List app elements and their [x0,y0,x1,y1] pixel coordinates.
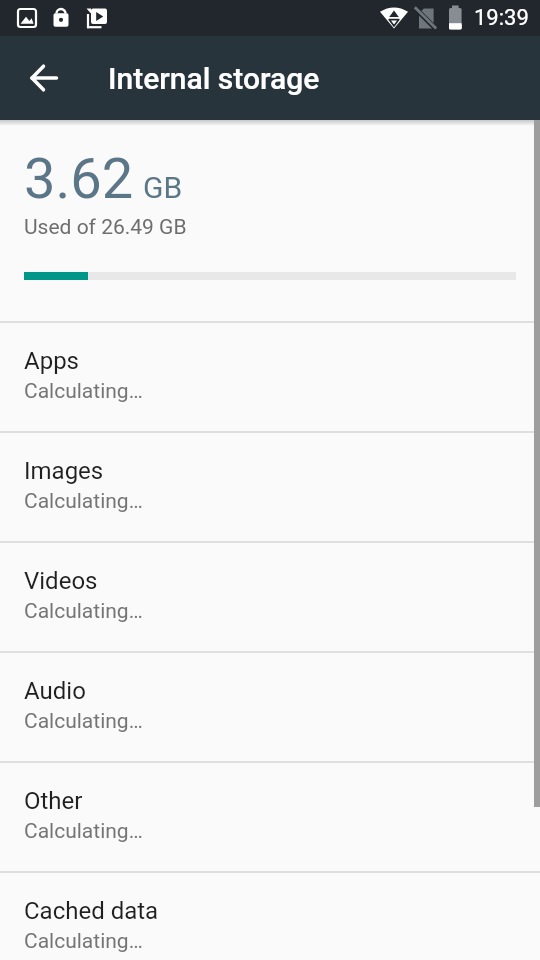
staticText: 19:39 [474,5,529,31]
button[interactable]: Images [0,433,540,541]
button[interactable]: Videos [0,543,540,651]
staticText: Cached data [24,897,159,925]
staticText: Apps [24,347,79,375]
button[interactable]: Other [0,763,540,871]
staticText: Calculating… [24,379,143,404]
staticText: Videos [24,567,98,595]
button[interactable] [0,36,88,120]
staticText: Images [24,457,104,485]
staticText: 3.62 [24,146,134,212]
staticText: Calculating… [24,929,143,954]
staticText: Calculating… [24,709,143,734]
staticText: Other [24,787,83,815]
button[interactable]: Apps [0,323,540,431]
staticText: Audio [24,677,86,705]
staticText: Internal storage [108,61,320,96]
button[interactable]: Audio [0,653,540,761]
staticText: Used of 26.49 GB [24,215,187,240]
staticText: Calculating… [24,599,143,624]
staticText: Calculating… [24,819,143,844]
button[interactable]: Cached data [0,873,540,960]
staticText: GB [143,170,183,205]
staticText: Calculating… [24,489,143,514]
